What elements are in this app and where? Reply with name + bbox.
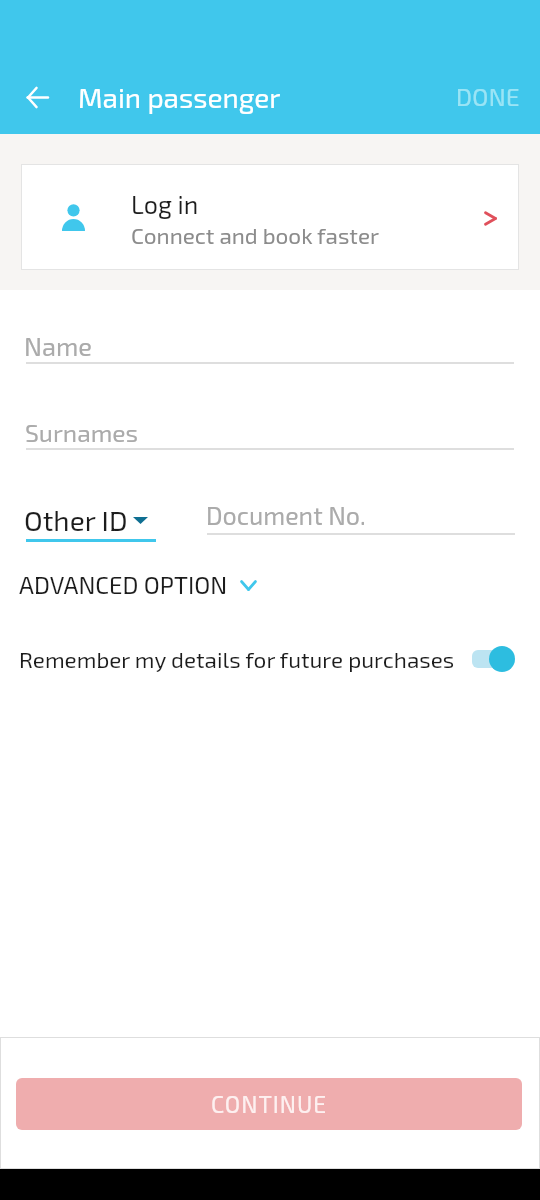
staticText: Connect and book faster [131,222,380,249]
button[interactable]: Document No. [207,492,515,536]
staticText: Document No. [206,500,366,530]
button[interactable]: CONTINUE [16,1078,522,1130]
button[interactable]: Name [26,320,514,364]
button[interactable]: Log in [21,164,519,270]
staticText: Remember my details for future purchases [19,646,455,673]
staticText: Other ID [24,503,128,537]
staticText: Main passenger [78,80,281,114]
button[interactable]: Other ID [26,496,156,540]
staticText: Name [24,331,93,362]
button[interactable]: Remember my details for future purchases [0,637,540,681]
staticText: Surnames [25,417,139,447]
button[interactable]: Remember my details toggle, on [468,642,518,676]
staticText: CONTINUE [211,1090,328,1118]
button[interactable]: DONE [442,74,534,118]
staticText: Log in [131,189,199,219]
staticText: ADVANCED OPTION [19,570,228,599]
button[interactable]: Back [9,69,65,125]
staticText: DONE [456,82,520,111]
button[interactable]: ADVANCED OPTION [18,566,268,606]
button[interactable]: Surnames [26,406,514,450]
